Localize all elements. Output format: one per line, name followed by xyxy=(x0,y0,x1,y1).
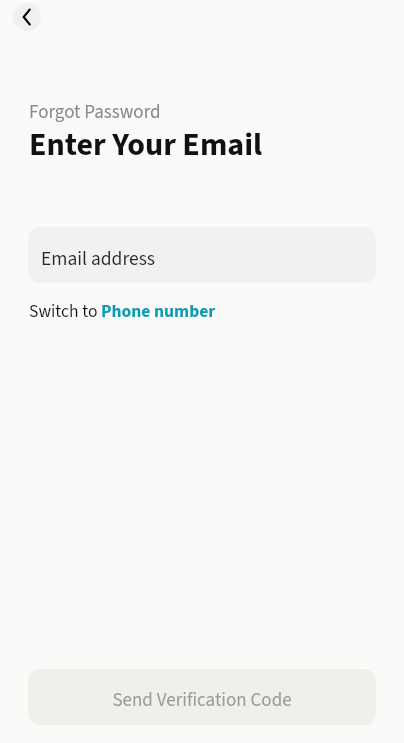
staticText: Email address xyxy=(41,245,155,273)
button[interactable]: Email address xyxy=(28,227,376,283)
button[interactable]: Phone number xyxy=(101,299,216,324)
button[interactable]: Back xyxy=(13,3,41,31)
staticText: Send Verification Code xyxy=(112,687,292,714)
staticText: Forgot Password xyxy=(29,99,161,126)
staticText: Switch to xyxy=(29,299,101,324)
staticText: Phone number xyxy=(101,299,216,324)
staticText: Enter Your Email xyxy=(29,122,263,168)
button[interactable]: Send Verification Code xyxy=(28,669,376,725)
